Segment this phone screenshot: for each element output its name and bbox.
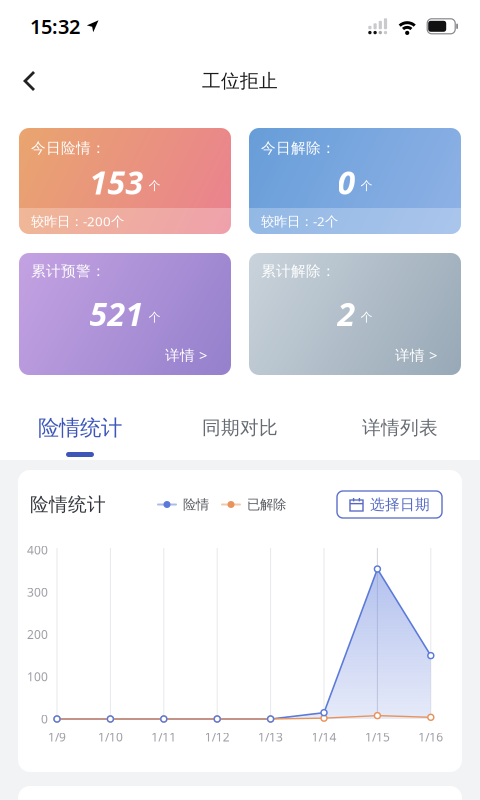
staticText: 1/12 <box>205 729 230 745</box>
staticText: 100 <box>27 669 48 685</box>
staticText: 个 <box>360 178 372 193</box>
button[interactable]: 险情统计 <box>0 415 160 460</box>
staticText: 已解除 <box>247 496 286 513</box>
staticText: 险情 <box>183 496 209 513</box>
staticText: 1/15 <box>365 729 390 745</box>
staticText: 详情 > <box>395 345 437 365</box>
staticText: 个 <box>360 310 372 324</box>
staticText: 400 <box>27 542 48 558</box>
staticText: 选择日期 <box>370 495 430 513</box>
staticText: 300 <box>27 584 48 600</box>
staticText: 累计预警： <box>31 262 106 280</box>
button[interactable]: 详情列表 <box>320 416 480 458</box>
staticText: 521 <box>89 292 143 335</box>
staticText: 详情列表 <box>362 416 438 439</box>
staticText: 1/16 <box>418 729 443 745</box>
button[interactable]: 选择日期 <box>337 491 442 518</box>
staticText: 较昨日：-2个 <box>261 212 338 230</box>
staticText: 个 <box>148 310 160 324</box>
staticText: 较昨日：-200个 <box>31 212 124 230</box>
staticText: 2 <box>337 292 355 335</box>
staticText: 1/10 <box>98 729 123 745</box>
staticText: 1/11 <box>151 729 176 745</box>
staticText: 今日解除： <box>261 139 336 157</box>
staticText: 工位拒止 <box>202 69 278 92</box>
staticText: 153 <box>89 161 143 203</box>
staticText: 个 <box>148 178 160 193</box>
button[interactable]: Back <box>0 60 37 102</box>
staticText: 0 <box>337 161 355 203</box>
staticText: 详情 > <box>165 345 207 365</box>
staticText: 险情统计 <box>38 415 122 441</box>
staticText: 1/9 <box>48 729 66 745</box>
staticText: 险情统计 <box>30 493 106 516</box>
button[interactable]: 累计预警： <box>19 253 231 375</box>
staticText: 今日险情： <box>31 139 106 157</box>
staticText: 200 <box>27 626 48 642</box>
staticText: 1/14 <box>311 729 336 745</box>
staticText: 累计解除： <box>261 262 336 280</box>
staticText: 15:32 <box>30 13 80 40</box>
staticText: 1/13 <box>258 729 283 745</box>
button[interactable]: 累计解除： <box>249 253 461 375</box>
staticText: 0 <box>41 711 48 727</box>
staticText: 同期对比 <box>202 416 278 439</box>
button[interactable]: 同期对比 <box>160 416 320 458</box>
